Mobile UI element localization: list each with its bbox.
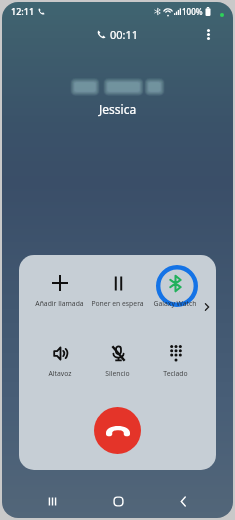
button[interactable]: More options	[199, 25, 217, 43]
staticText: Jessica	[99, 101, 137, 117]
button[interactable]: Back	[168, 486, 198, 516]
button[interactable]: Altavoz	[31, 342, 88, 384]
button[interactable]: Galaxy Watch	[146, 272, 204, 314]
button[interactable]: Poner en espera	[88, 272, 146, 314]
button[interactable]: Home	[103, 486, 133, 516]
button[interactable]: Silencio	[88, 342, 146, 384]
staticText: 00:11	[110, 27, 139, 42]
staticText: 12:11	[11, 5, 35, 17]
staticText: Poner en espera	[91, 299, 144, 308]
staticText: Añadir llamada	[35, 299, 84, 308]
staticText: Silencio	[105, 369, 130, 378]
staticText: Galaxy Watch	[153, 299, 197, 308]
button[interactable]: End call	[94, 407, 141, 454]
staticText: Teclado	[163, 369, 188, 378]
button[interactable]: Recents	[37, 486, 67, 516]
button[interactable]: Teclado	[146, 342, 204, 384]
staticText: Altavoz	[48, 369, 72, 378]
button[interactable]: More audio devices	[200, 300, 214, 314]
button[interactable]: Añadir llamada	[31, 272, 88, 314]
staticText: 100%	[182, 6, 203, 17]
